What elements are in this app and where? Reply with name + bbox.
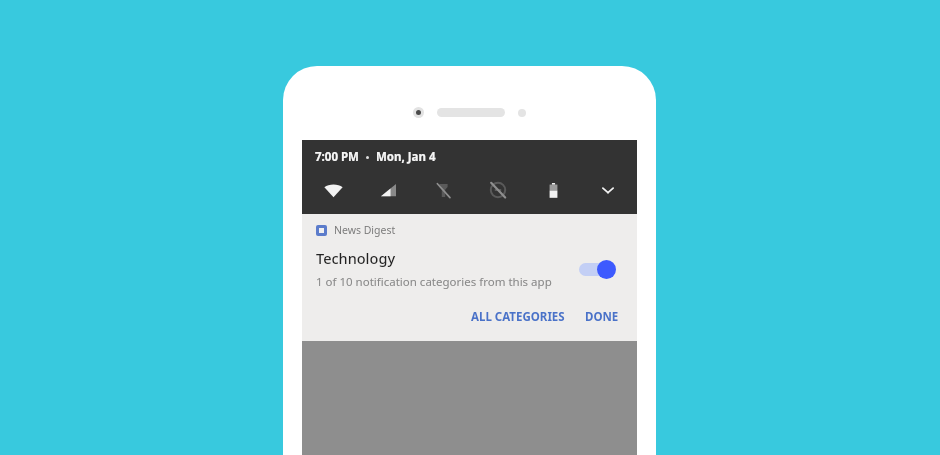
staticText: 1 of 10 notification categories from thi… xyxy=(316,274,552,290)
button[interactable]: Wi-Fi xyxy=(318,175,348,205)
button[interactable]: Technology notifications toggle, on xyxy=(577,256,623,282)
button[interactable]: Mobile signal xyxy=(373,175,403,205)
button[interactable]: Expand quick settings xyxy=(593,175,623,205)
staticText: Technology xyxy=(316,248,396,268)
staticText: DONE xyxy=(585,309,619,325)
staticText: Mon, Jan 4 xyxy=(376,149,436,165)
staticText: ALL CATEGORIES xyxy=(471,309,565,325)
button[interactable]: Battery xyxy=(538,175,568,205)
button[interactable]: DONE xyxy=(579,305,625,329)
button[interactable]: Do not disturb off xyxy=(483,175,513,205)
staticText: 7:00 PM xyxy=(315,149,359,165)
button[interactable]: ALL CATEGORIES xyxy=(465,305,571,329)
button[interactable]: Flashlight off xyxy=(428,175,458,205)
staticText: News Digest xyxy=(334,223,396,237)
